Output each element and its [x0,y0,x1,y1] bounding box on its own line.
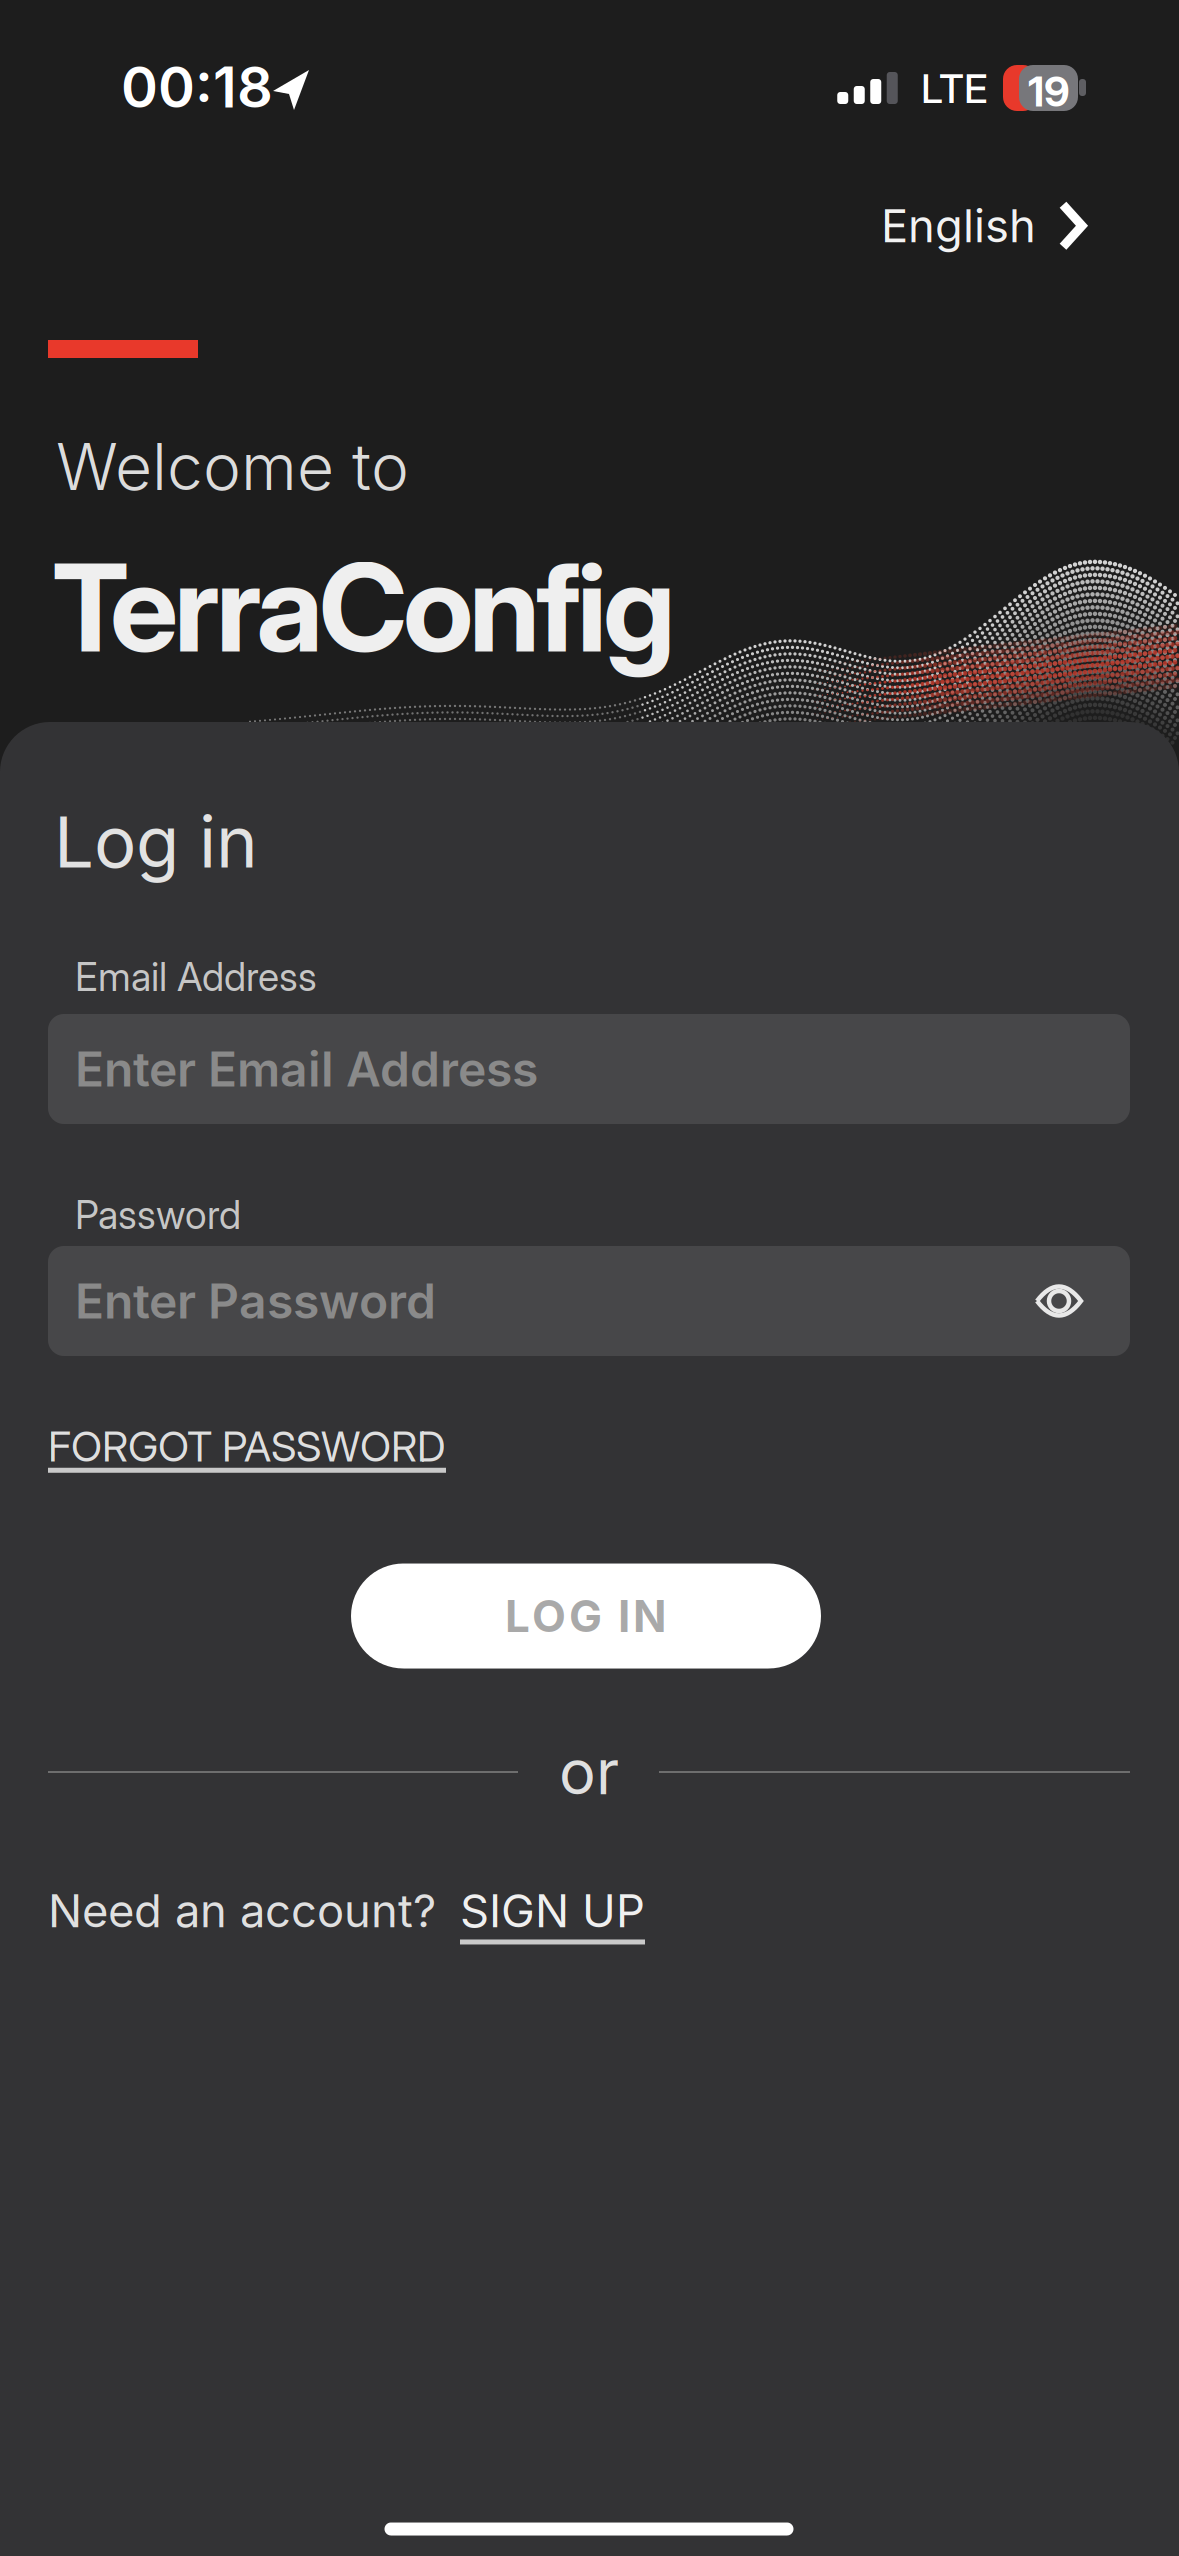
staticText: 19 [1028,67,1070,116]
staticText: Log in [54,800,258,883]
staticText: LOG IN [505,1589,667,1643]
staticText: Password [75,1192,241,1238]
button[interactable]: SIGN UP [460,1884,645,1937]
staticText: SIGN UP [460,1884,645,1937]
staticText: English [881,199,1036,252]
button[interactable]: FORGOT PASSWORD [48,1422,446,1471]
staticText: Email Address [75,954,317,1000]
staticText: Enter Password [75,1272,436,1330]
button[interactable]: English [881,199,1087,252]
staticText: Enter Email Address [75,1040,538,1098]
staticText: TerraConfig [52,534,676,681]
staticText: or [559,1736,619,1808]
staticText: FORGOT PASSWORD [48,1422,446,1471]
button[interactable]: LOG IN [351,1563,821,1668]
button[interactable]: Enter Password [48,1246,1130,1356]
button[interactable]: Enter Email Address [48,1014,1130,1124]
staticText: Welcome to [56,428,409,505]
staticText: Need an account? [48,1884,436,1937]
staticText: LTE [921,65,988,112]
staticText: 00:18 [121,54,273,120]
button[interactable]: Show password [1035,1285,1083,1317]
